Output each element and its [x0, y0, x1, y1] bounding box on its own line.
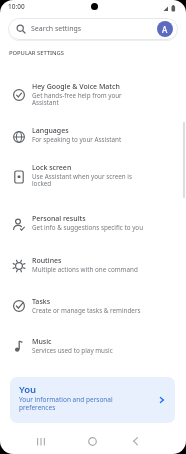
staticText: Music — [32, 337, 52, 347]
staticText: Use Assistant when your screen is locked — [32, 172, 132, 188]
staticText: Multiple actions with one command — [32, 265, 138, 274]
staticText: Hey Google & Voice Match — [32, 82, 120, 92]
staticText: A — [162, 24, 168, 35]
staticText: 10:00 — [8, 2, 25, 11]
staticText: Languages — [32, 126, 69, 136]
button[interactable]: Hey Google & Voice Match — [0, 82, 186, 114]
button[interactable] — [83, 434, 103, 450]
staticText: Lock screen — [32, 163, 72, 173]
button[interactable]: Personal results — [0, 214, 186, 240]
staticText: Tasks — [32, 297, 51, 307]
button[interactable]: A — [157, 21, 173, 37]
staticText: Personal results — [32, 214, 86, 224]
staticText: Get info & suggestions specific to you — [32, 223, 144, 232]
button[interactable]: You — [10, 377, 175, 423]
staticText: Create or manage tasks & reminders — [32, 306, 141, 315]
staticText: Search settings — [31, 24, 82, 34]
staticText: You — [19, 383, 37, 396]
button[interactable]: Search settings — [8, 18, 178, 40]
button[interactable]: Routines — [0, 256, 186, 282]
button[interactable] — [127, 434, 147, 450]
button[interactable]: Lock screen — [0, 163, 186, 195]
button[interactable]: Music — [0, 337, 186, 363]
staticText: Your information and personal preference… — [19, 395, 113, 412]
button[interactable]: Tasks — [0, 297, 186, 323]
button[interactable]: Languages — [0, 126, 186, 152]
staticText: POPULAR SETTINGS — [9, 49, 64, 57]
button[interactable] — [31, 434, 51, 450]
staticText: Get hands-free help from your Assistant — [32, 91, 122, 107]
staticText: Routines — [32, 256, 62, 266]
staticText: For speaking to your Assistant — [32, 135, 122, 144]
staticText: Services used to play music — [32, 346, 113, 355]
